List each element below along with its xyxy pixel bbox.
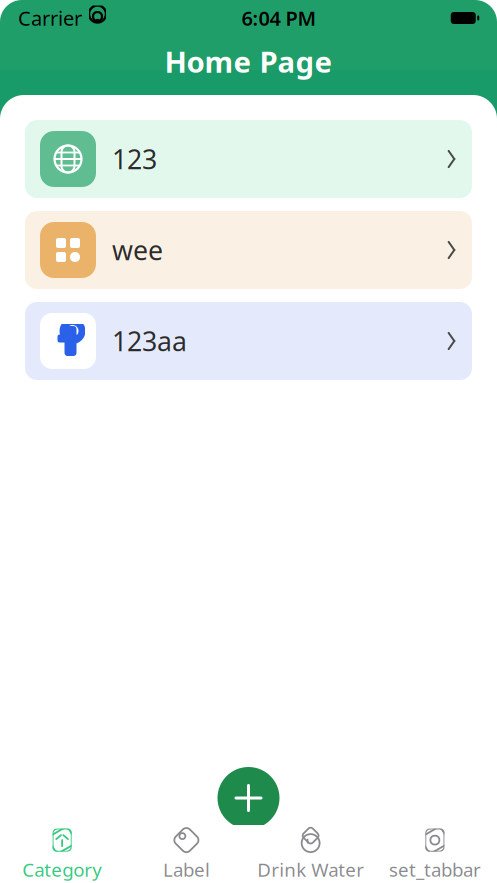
- staticText: Carrier: [18, 5, 82, 31]
- staticText: 123: [112, 141, 157, 177]
- staticText: wee: [112, 232, 163, 268]
- staticText: set_tabbar: [389, 857, 481, 882]
- staticText: Drink Water: [257, 857, 364, 882]
- button[interactable]: Add: [217, 767, 279, 829]
- staticText: Home Page: [164, 42, 332, 81]
- button[interactable]: 123: [25, 120, 472, 198]
- button[interactable]: 123aa: [25, 302, 472, 380]
- button[interactable]: Category: [0, 825, 124, 883]
- staticText: Label: [163, 857, 210, 882]
- staticText: 123aa: [112, 323, 187, 359]
- button[interactable]: Label: [124, 825, 248, 883]
- button[interactable]: Drink Water: [248, 825, 373, 883]
- button[interactable]: set_tabbar: [373, 825, 497, 883]
- button[interactable]: wee: [25, 211, 472, 289]
- staticText: Category: [22, 857, 102, 882]
- staticText: 6:04 PM: [241, 5, 316, 31]
